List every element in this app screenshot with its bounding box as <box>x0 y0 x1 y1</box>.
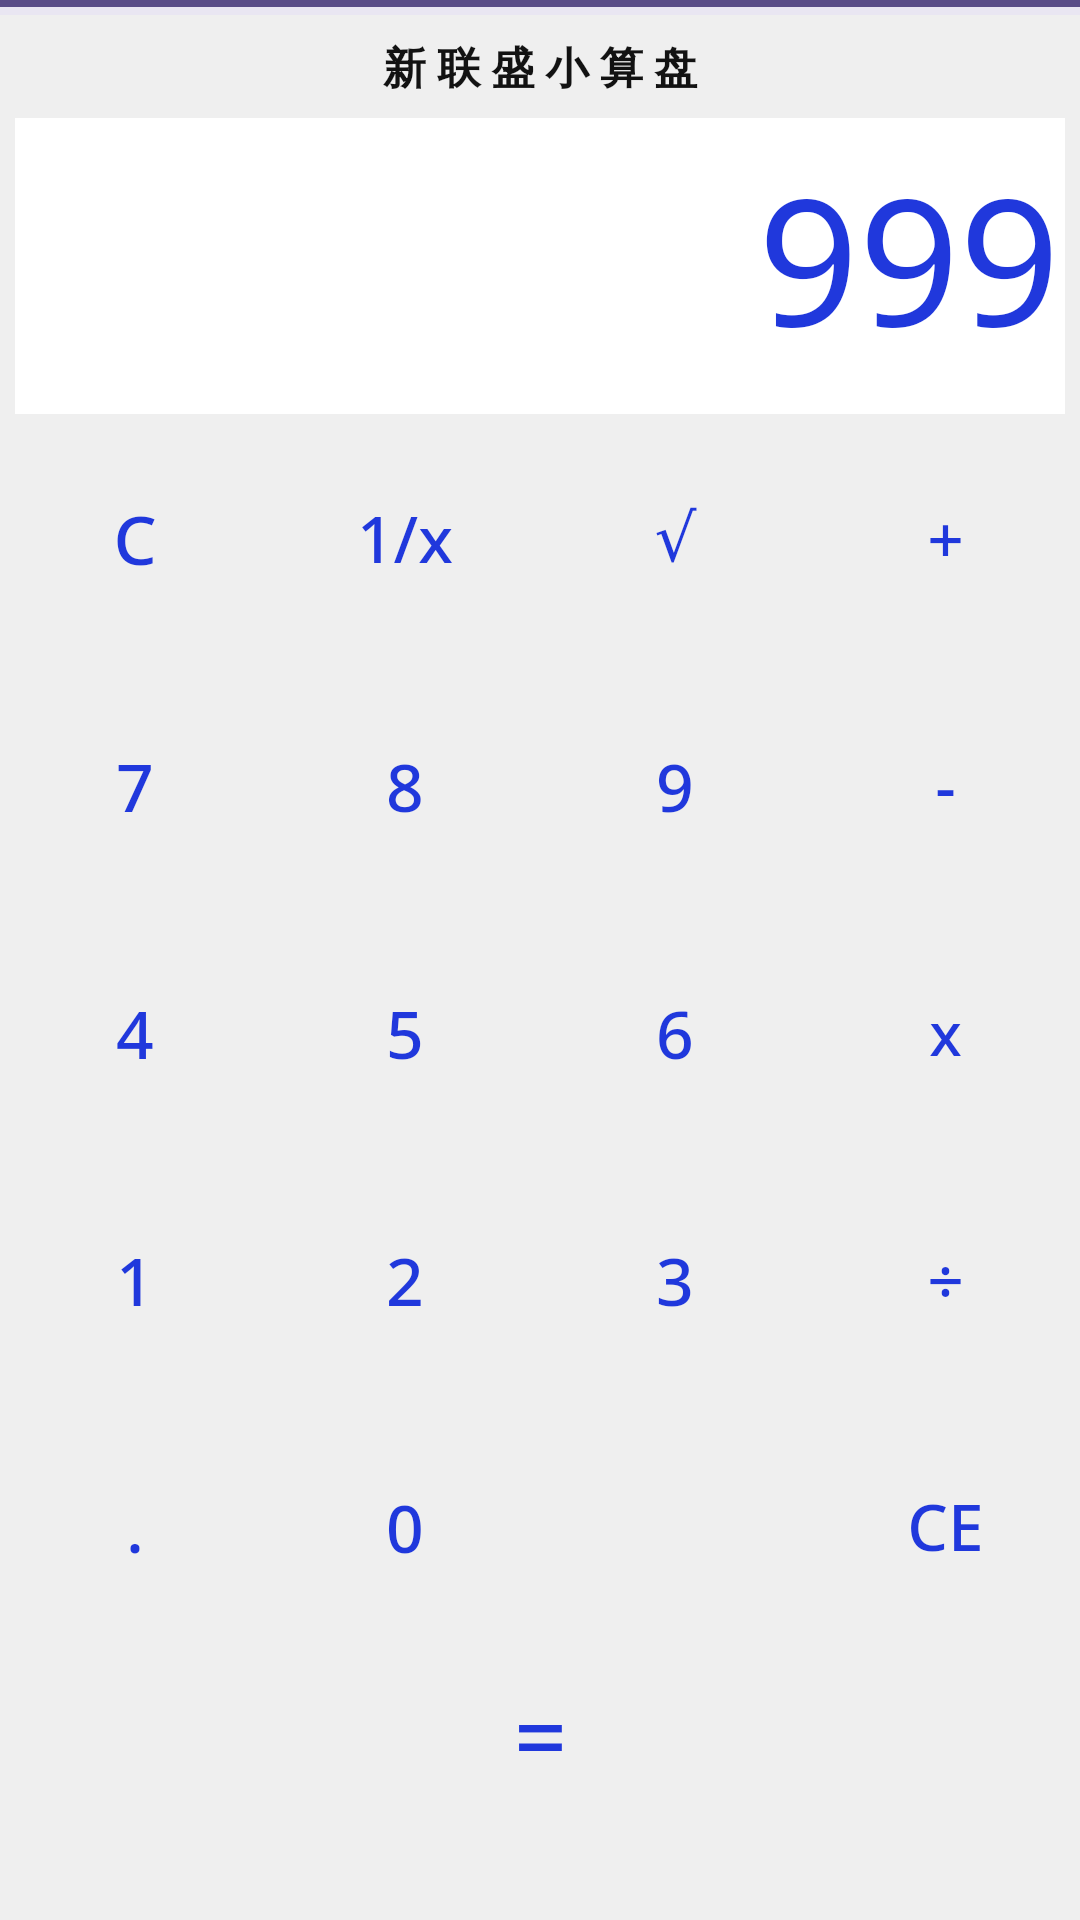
staticText: x <box>929 992 962 1074</box>
staticText: 999 <box>758 138 1061 378</box>
staticText: 4 <box>116 988 154 1078</box>
button[interactable]: 6 <box>540 909 810 1156</box>
staticText: 3 <box>656 1235 694 1325</box>
staticText: - <box>935 742 956 829</box>
button[interactable]: 7 <box>0 662 270 909</box>
staticText: CE <box>907 1483 984 1570</box>
staticText: + <box>927 495 964 582</box>
button[interactable]: CE <box>810 1403 1080 1650</box>
button[interactable]: 2 <box>270 1156 540 1403</box>
staticText: 1/x <box>357 495 453 582</box>
button[interactable]: Multiply <box>810 909 1080 1156</box>
staticText: = <box>514 1673 567 1798</box>
button[interactable]: C <box>0 414 270 662</box>
staticText: C <box>113 492 157 585</box>
button[interactable]: Minus <box>810 662 1080 909</box>
button[interactable]: One over x <box>270 414 540 662</box>
button[interactable]: Square root <box>540 414 810 662</box>
button[interactable]: 0 <box>270 1403 540 1650</box>
button[interactable]: 8 <box>270 662 540 909</box>
button[interactable]: Decimal point <box>0 1403 270 1650</box>
staticText: 新 联 盛 小 算 盘 <box>383 37 697 96</box>
button[interactable]: Divide <box>810 1156 1080 1403</box>
staticText: 2 <box>386 1235 424 1325</box>
staticText: 6 <box>656 988 694 1078</box>
staticText: 5 <box>386 988 424 1078</box>
staticText: 8 <box>386 741 424 831</box>
staticText: 7 <box>116 741 154 831</box>
staticText: √ <box>654 500 697 577</box>
button[interactable]: Plus <box>810 414 1080 662</box>
button[interactable]: 9 <box>540 662 810 909</box>
button[interactable]: 5 <box>270 909 540 1156</box>
staticText: 0 <box>386 1482 424 1572</box>
button[interactable]: 1 <box>0 1156 270 1403</box>
staticText: . <box>126 1482 144 1572</box>
button[interactable]: 4 <box>0 909 270 1156</box>
staticText: 9 <box>656 741 694 831</box>
button[interactable]: 3 <box>540 1156 810 1403</box>
staticText: 1 <box>116 1235 154 1325</box>
staticText: ÷ <box>927 1236 964 1323</box>
button[interactable]: Equals <box>405 1650 675 1820</box>
